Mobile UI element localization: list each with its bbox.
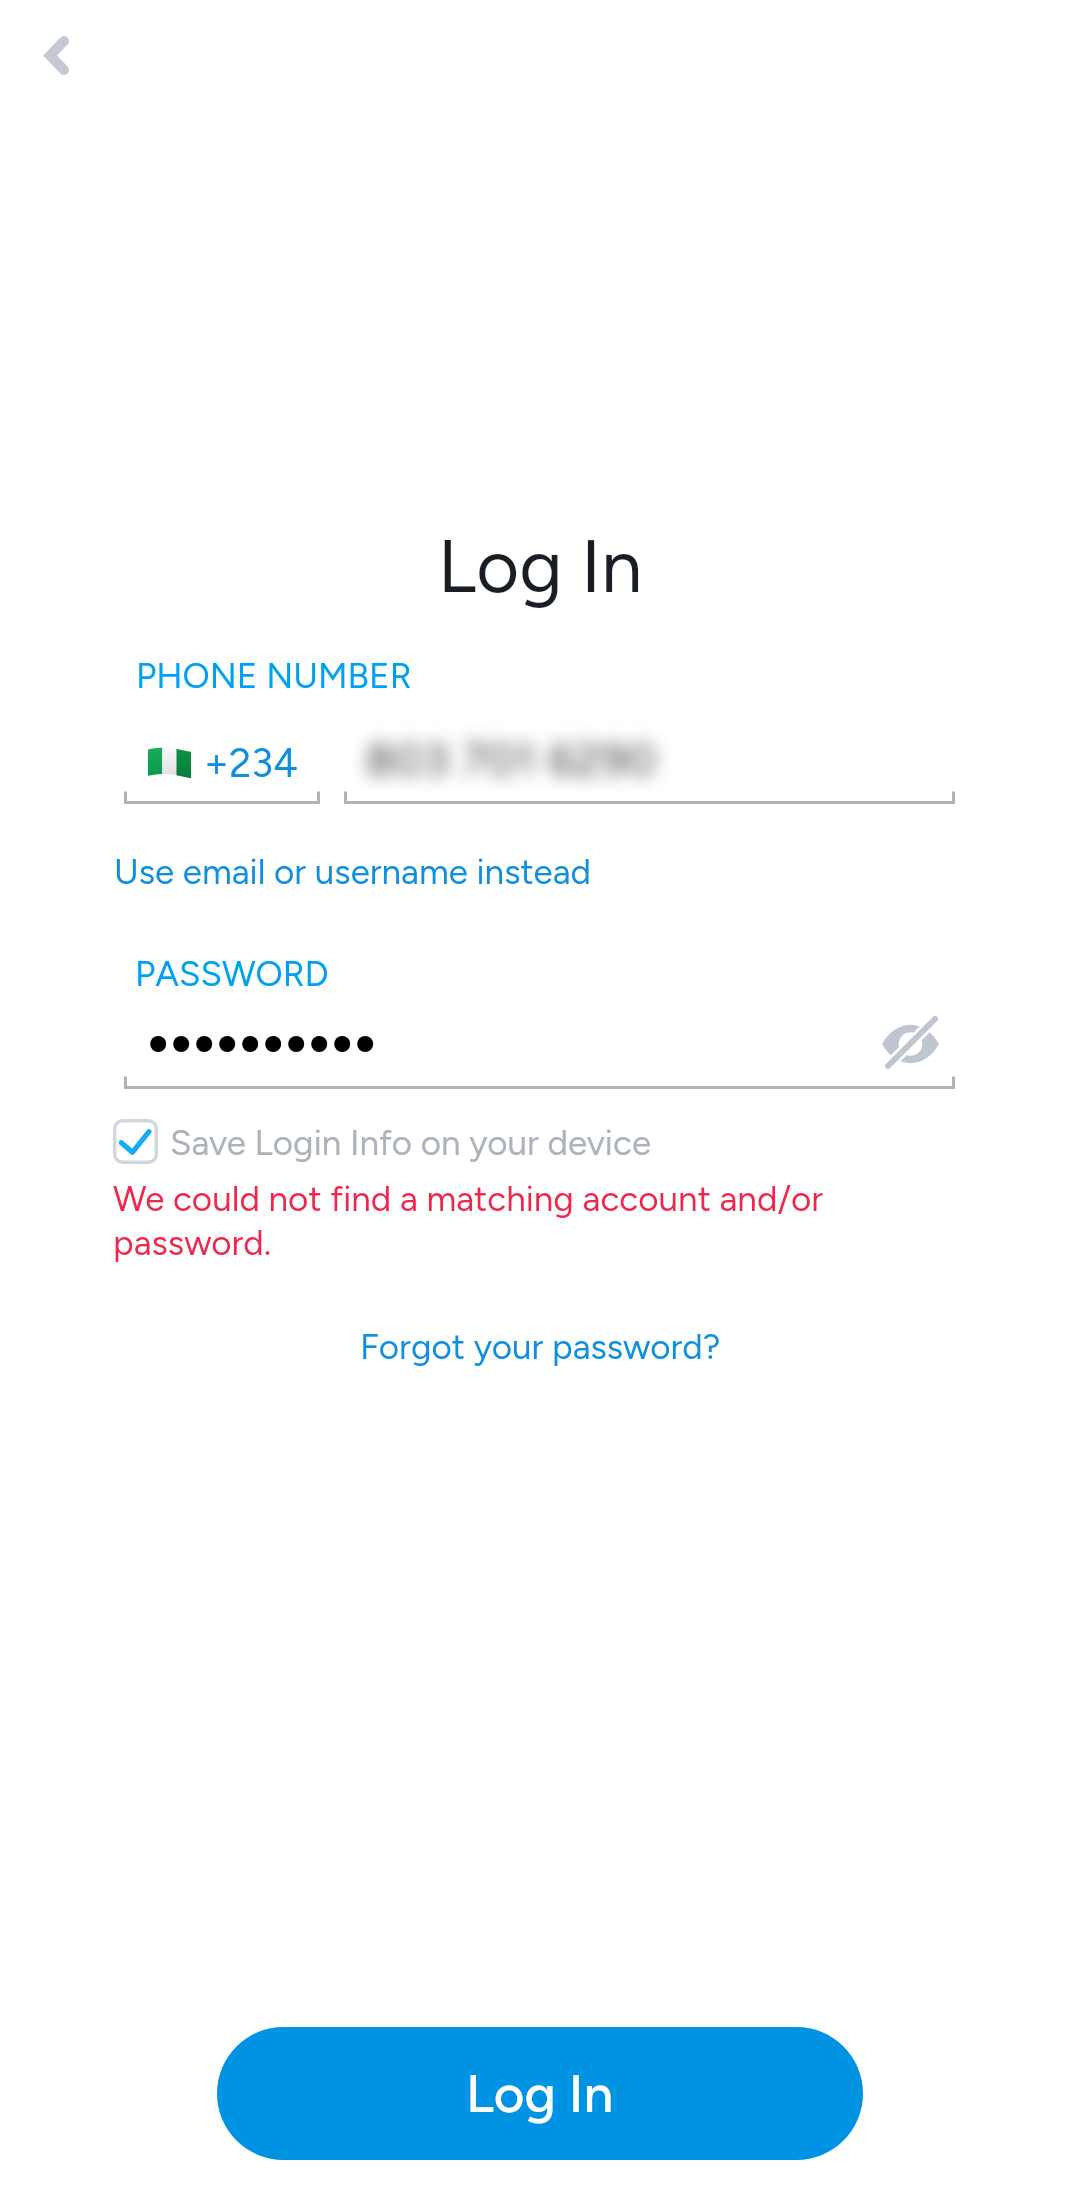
staticText: Forgot your password?	[360, 1326, 721, 1368]
button[interactable]: Password	[124, 1008, 955, 1089]
button[interactable]: Forgot your password?	[360, 1326, 721, 1368]
staticText: Use email or username instead	[114, 851, 592, 893]
staticText: password.	[113, 1222, 272, 1264]
staticText: 803 701 6290	[366, 733, 658, 786]
staticText: Save Login Info on your device	[170, 1122, 652, 1164]
button[interactable]: Log In	[217, 2027, 863, 2160]
staticText: PASSWORD	[135, 953, 329, 995]
button[interactable]: Use email or username instead	[114, 851, 592, 893]
staticText: Log In	[466, 2062, 614, 2126]
button[interactable]: Save Login Info on your device	[113, 1117, 650, 1166]
staticText: Log In	[0, 522, 1080, 611]
button[interactable]: Back	[9, 7, 105, 103]
button[interactable]: Show password	[856, 996, 966, 1090]
staticText: +234	[204, 739, 298, 787]
staticText: We could not find a matching account and…	[113, 1178, 824, 1220]
staticText: PHONE NUMBER	[136, 655, 412, 697]
button[interactable]: Country code +234	[124, 719, 320, 804]
button[interactable]: Phone number	[344, 719, 955, 804]
